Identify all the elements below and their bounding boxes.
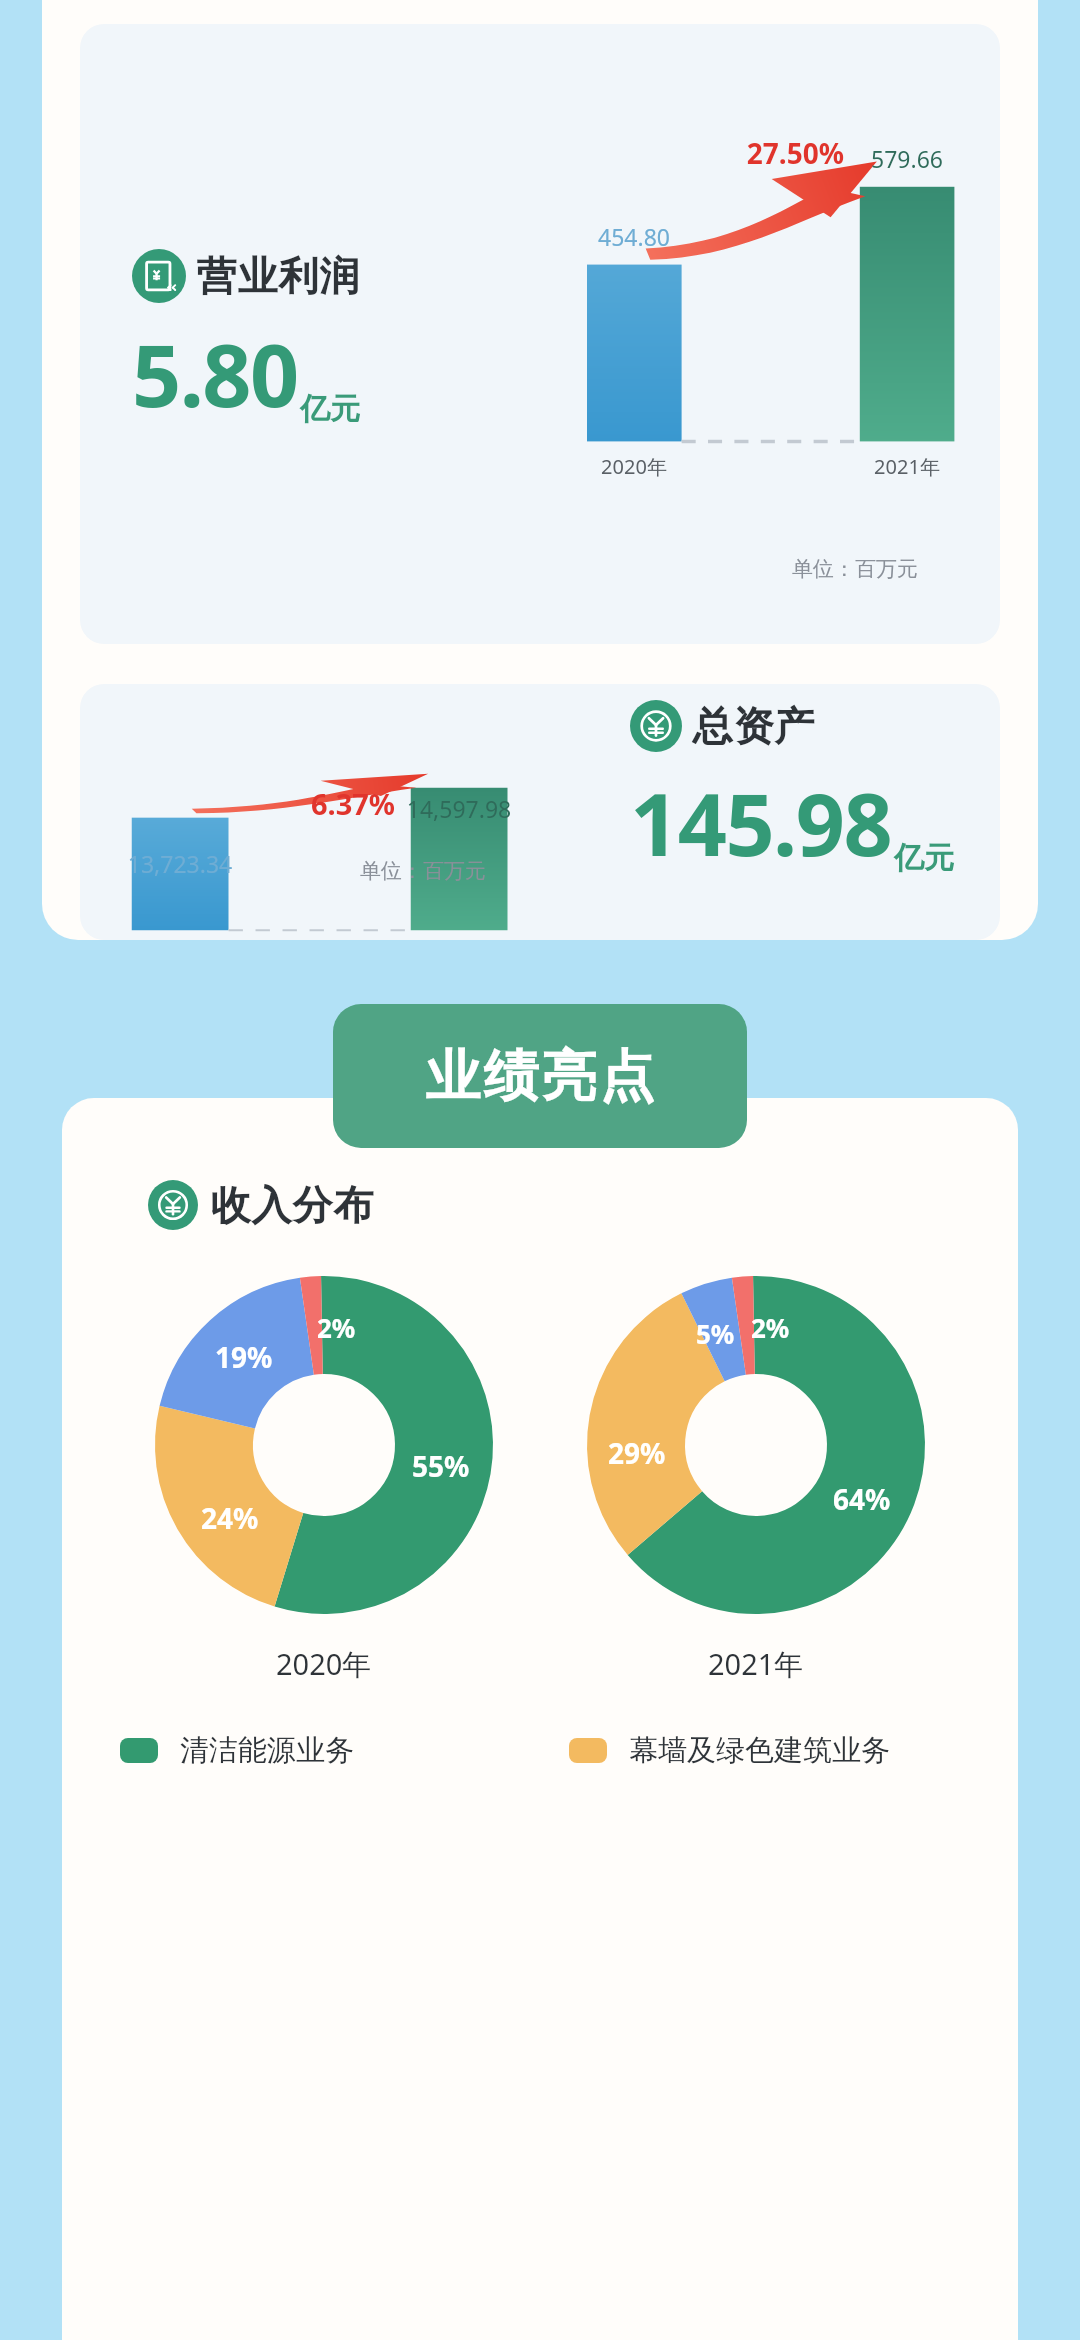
staticText: 收入分布 [210, 1180, 374, 1230]
staticText: 亿元 [894, 839, 954, 877]
button[interactable]: 营业利润 [80, 24, 1000, 644]
staticText: 55% [412, 1447, 470, 1485]
staticText: 亿元 [300, 390, 360, 428]
staticText: 5% [696, 1316, 735, 1351]
staticText: 2021年 [708, 1644, 804, 1684]
staticText: 2020年 [568, 453, 700, 480]
staticText: 454.80 [555, 221, 713, 252]
staticText: 14,597.98 [369, 793, 549, 824]
staticText: 2021年 [841, 453, 973, 480]
staticText: 单位：百万元 [360, 858, 486, 884]
staticText: 145.98 [630, 764, 892, 881]
staticText: 营业利润 [196, 251, 360, 301]
staticText: 27.50% [642, 134, 844, 172]
staticText: 幕墙及绿色建筑业务 [629, 1732, 890, 1769]
staticText: 清洁能源业务 [180, 1732, 354, 1769]
staticText: 579.66 [819, 143, 995, 174]
button[interactable]: 13,723.34 [80, 684, 1000, 940]
staticText: 29% [608, 1434, 666, 1472]
button[interactable]: 业绩亮点 [333, 1004, 747, 1148]
staticText: 2% [317, 1310, 356, 1345]
staticText: 总资产 [692, 701, 815, 751]
staticText: 2020年 [276, 1644, 372, 1684]
button[interactable]: 清洁能源业务 [120, 1732, 569, 1769]
staticText: 24% [201, 1499, 259, 1537]
staticText: 5.80 [132, 315, 298, 432]
staticText: 64% [833, 1480, 891, 1518]
staticText: 2% [751, 1310, 790, 1345]
button[interactable]: 幕墙及绿色建筑业务 [569, 1732, 1018, 1769]
staticText: 6.37% [188, 784, 395, 823]
staticText: 19% [215, 1338, 273, 1376]
staticText: 业绩亮点 [424, 1042, 656, 1111]
staticText: 单位：百万元 [792, 556, 918, 582]
staticText: 13,723.34 [99, 848, 261, 879]
